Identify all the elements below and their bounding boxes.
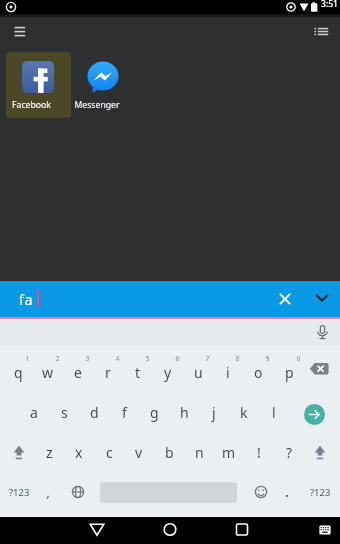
button[interactable]: [69, 483, 87, 501]
staticText: ?123: [310, 486, 331, 499]
staticText: ,: [46, 484, 50, 500]
button[interactable]: t: [124, 358, 152, 386]
button[interactable]: s: [50, 398, 78, 426]
staticText: u: [194, 363, 203, 382]
staticText: c: [106, 443, 113, 462]
staticText: n: [195, 443, 204, 462]
staticText: ?123: [9, 486, 30, 499]
button[interactable]: [157, 517, 183, 544]
button[interactable]: i: [214, 358, 242, 386]
staticText: p: [285, 363, 294, 382]
staticText: m: [222, 443, 236, 462]
staticText: y: [164, 363, 172, 382]
staticText: g: [150, 403, 159, 422]
staticText: i: [226, 363, 230, 382]
staticText: 9: [265, 354, 270, 364]
button[interactable]: [304, 404, 325, 425]
button[interactable]: Messenger: [71, 52, 136, 118]
button[interactable]: ?: [275, 438, 303, 466]
staticText: q: [14, 363, 23, 382]
button[interactable]: p: [275, 358, 303, 386]
button[interactable]: [7, 440, 31, 464]
staticText: 0: [296, 354, 301, 364]
staticText: b: [165, 443, 174, 462]
staticText: h: [180, 403, 189, 422]
button[interactable]: z: [35, 438, 63, 466]
button[interactable]: a: [20, 398, 48, 426]
button[interactable]: [310, 23, 334, 41]
button[interactable]: b: [155, 438, 183, 466]
button[interactable]: Facebook: [6, 52, 71, 118]
staticText: 3: [85, 354, 90, 364]
staticText: f: [122, 403, 127, 422]
staticText: k: [240, 403, 248, 422]
button[interactable]: [84, 517, 110, 544]
staticText: e: [74, 363, 82, 382]
staticText: j: [212, 403, 216, 422]
button[interactable]: fa: [0, 281, 340, 317]
staticText: w: [42, 363, 54, 382]
button[interactable]: y: [154, 358, 182, 386]
button[interactable]: !: [245, 438, 273, 466]
button[interactable]: ?123: [4, 480, 34, 504]
button[interactable]: [229, 517, 255, 544]
button[interactable]: e: [64, 358, 92, 386]
staticText: .: [285, 484, 289, 500]
button[interactable]: r: [94, 358, 122, 386]
staticText: s: [61, 403, 68, 422]
staticText: r: [105, 363, 111, 382]
staticText: 6: [175, 354, 180, 364]
button[interactable]: ?123: [305, 480, 335, 504]
button[interactable]: [315, 517, 335, 544]
staticText: 8: [235, 354, 240, 364]
button[interactable]: l: [260, 398, 288, 426]
staticText: t: [135, 363, 141, 382]
staticText: 5: [145, 354, 150, 364]
button[interactable]: d: [80, 398, 108, 426]
staticText: fa: [19, 289, 33, 309]
button[interactable]: o: [244, 358, 272, 386]
staticText: o: [254, 363, 263, 382]
button[interactable]: w: [34, 358, 62, 386]
staticText: 1: [25, 354, 30, 364]
staticText: x: [75, 443, 83, 462]
staticText: Messenger: [74, 99, 120, 111]
button[interactable]: f: [110, 398, 138, 426]
button[interactable]: h: [170, 398, 198, 426]
button[interactable]: x: [65, 438, 93, 466]
button[interactable]: c: [95, 438, 123, 466]
staticText: Facebook: [12, 99, 51, 111]
staticText: z: [46, 443, 53, 462]
staticText: 7: [205, 354, 210, 364]
button[interactable]: q: [4, 358, 32, 386]
button[interactable]: n: [185, 438, 213, 466]
button[interactable]: j: [200, 398, 228, 426]
button[interactable]: u: [184, 358, 212, 386]
staticText: 4: [115, 354, 120, 364]
button[interactable]: [252, 483, 270, 501]
button[interactable]: [10, 23, 30, 41]
button[interactable]: [312, 322, 333, 343]
staticText: v: [135, 443, 143, 462]
staticText: a: [30, 403, 38, 422]
button[interactable]: [308, 440, 332, 464]
button[interactable]: m: [215, 438, 243, 466]
button[interactable]: v: [125, 438, 153, 466]
button[interactable]: g: [140, 398, 168, 426]
staticText: 2: [55, 354, 60, 364]
staticText: ?: [286, 443, 293, 462]
staticText: 3:51: [321, 0, 338, 10]
staticText: !: [257, 443, 261, 462]
staticText: l: [272, 403, 276, 422]
staticText: d: [90, 403, 99, 422]
button[interactable]: [308, 361, 334, 381]
button[interactable]: k: [230, 398, 258, 426]
